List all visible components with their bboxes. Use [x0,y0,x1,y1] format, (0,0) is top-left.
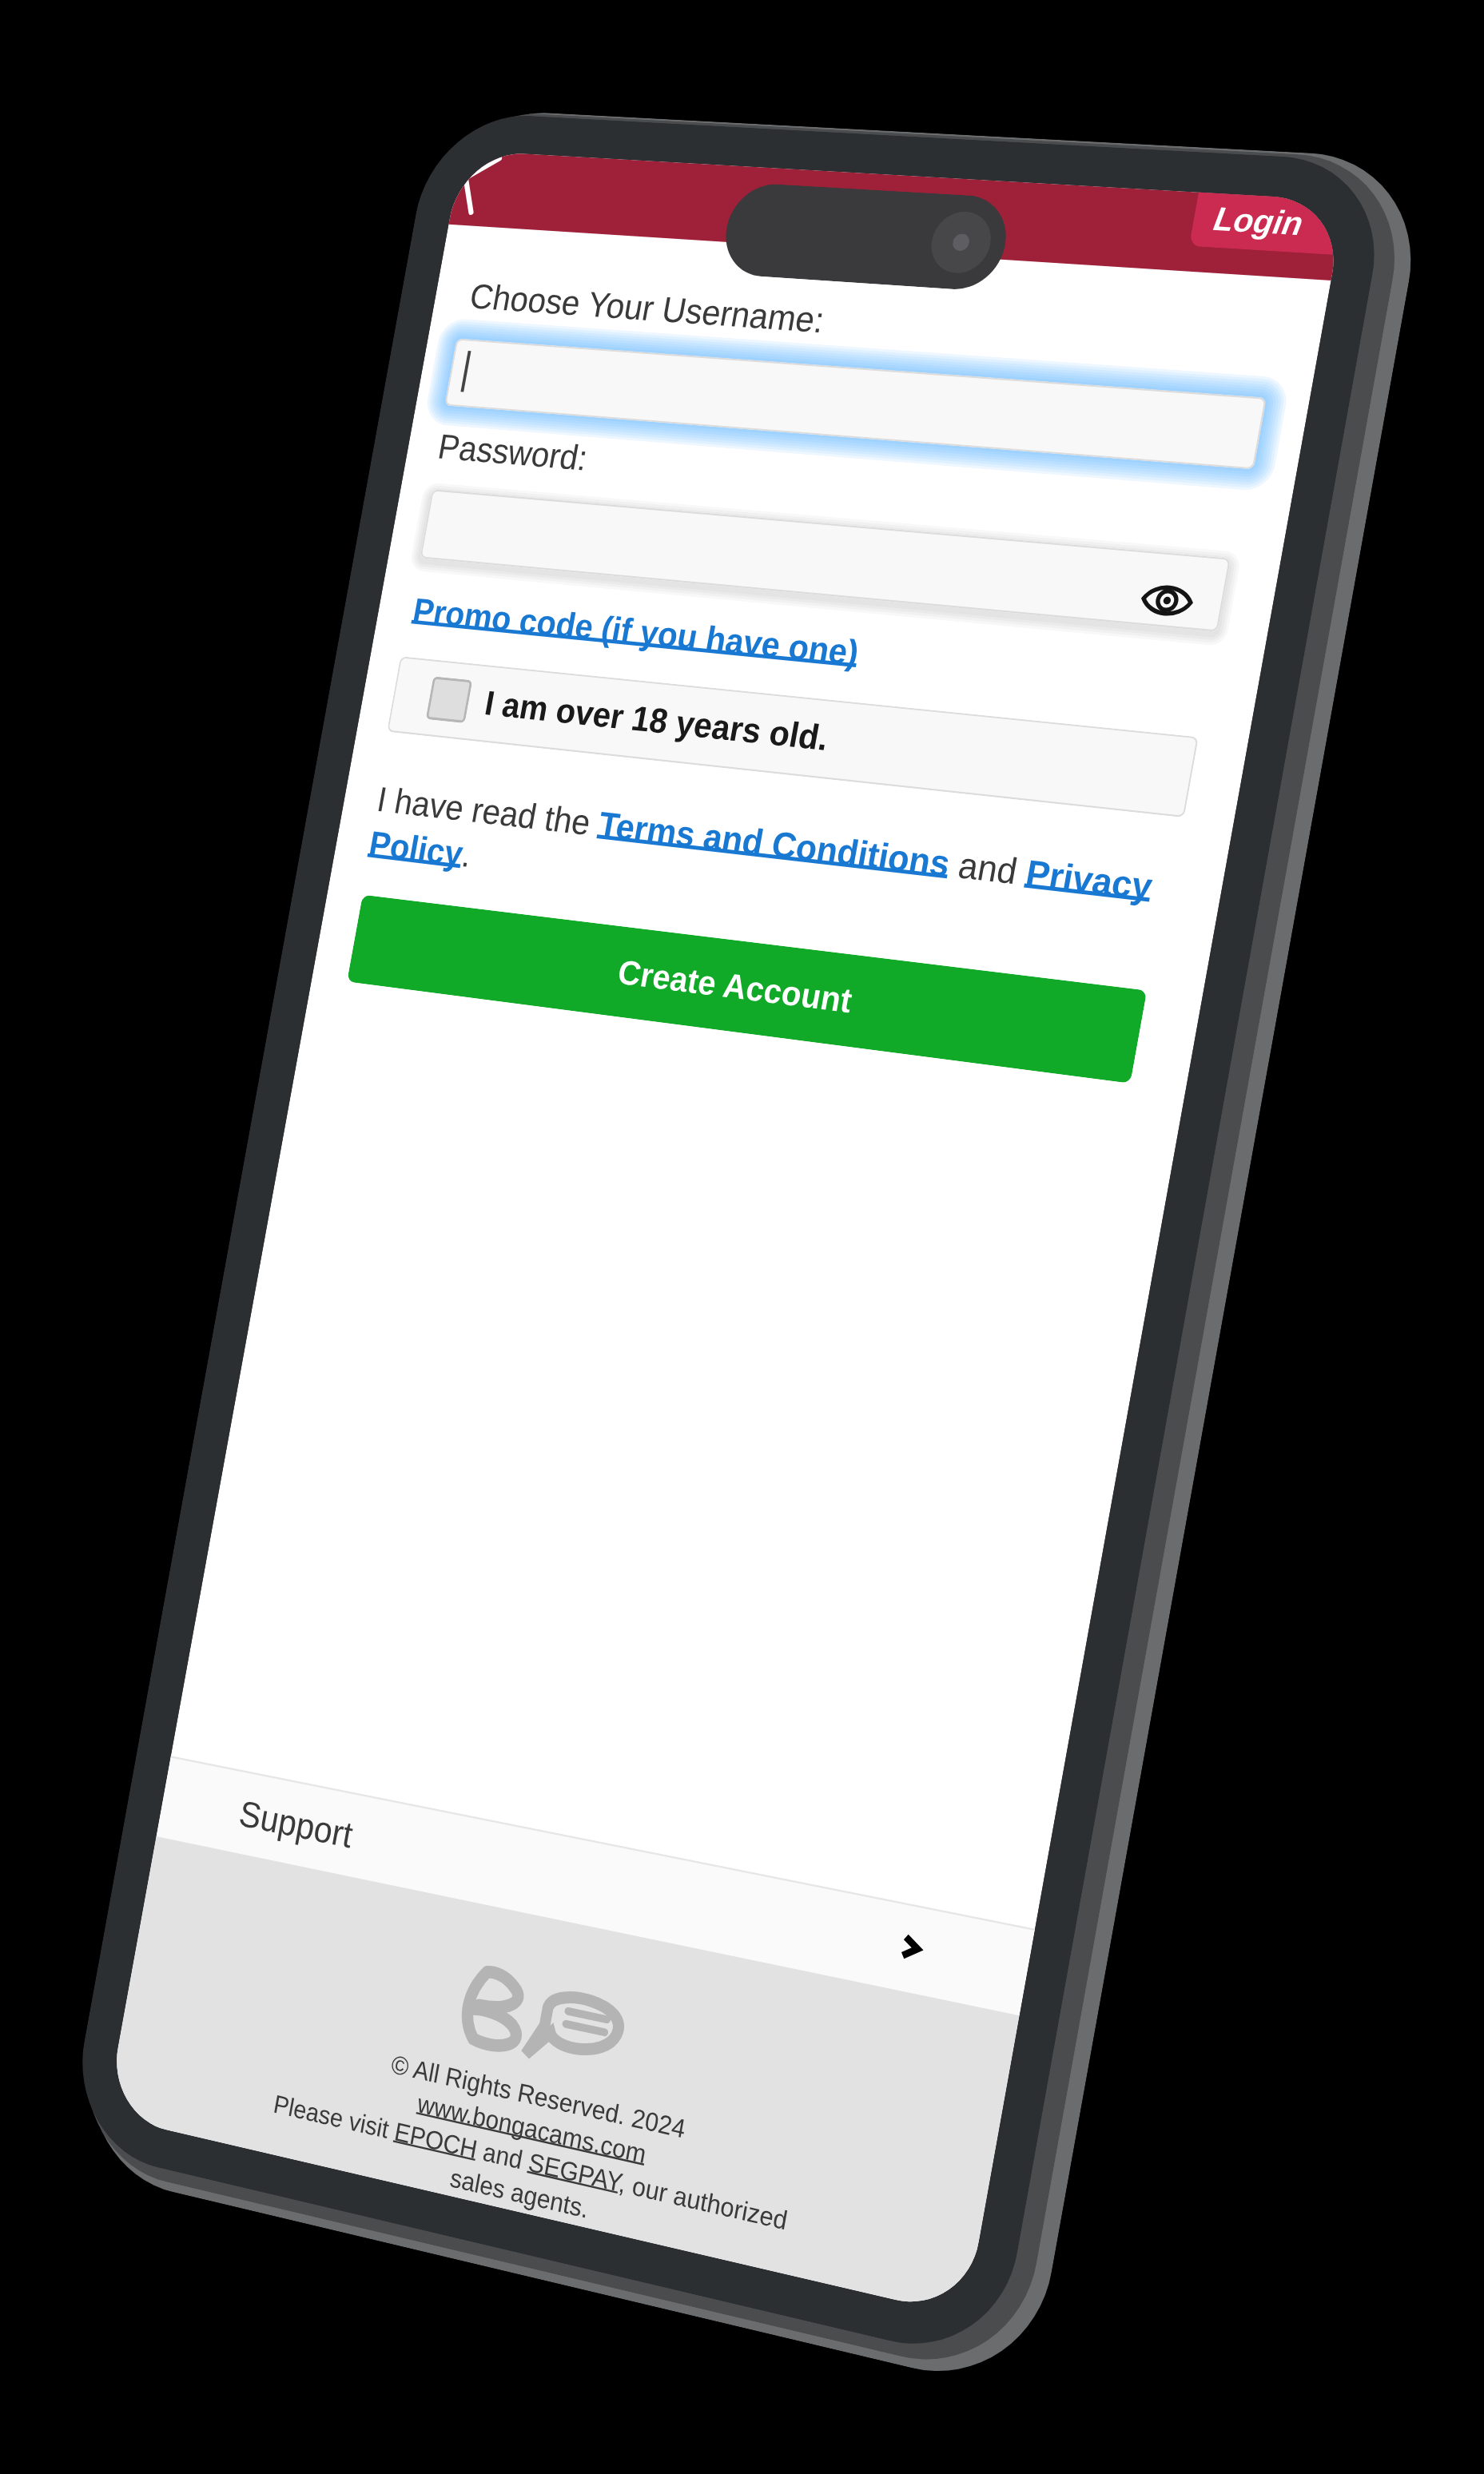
button[interactable]: Show password [1138,573,1196,628]
staticText: Support [236,1793,356,1856]
button[interactable]: Promo code (if you have one) [410,591,863,673]
staticText: Choose Your Username: [467,277,828,340]
staticText: Login [1211,200,1306,242]
button[interactable]: Login [1189,192,1345,255]
button[interactable] [444,338,1267,470]
button[interactable]: Create Account [347,895,1147,1083]
staticText: Password: [435,427,591,478]
staticText: I am over 18 years old. [482,684,832,758]
staticText: Create Account [615,953,856,1021]
button[interactable] [387,656,1199,818]
button[interactable] [420,489,1231,632]
button[interactable]: I have read the Terms and Conditions and… [366,780,1177,957]
button[interactable]: Support [156,1756,1035,2015]
button[interactable]: Open support [889,1924,932,1970]
staticText: © All Rights Reserved. 2024 www.bongacam… [246,2022,823,2274]
